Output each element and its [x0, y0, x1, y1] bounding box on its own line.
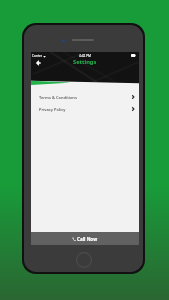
staticText: 4:42 PM: [79, 54, 91, 58]
button[interactable]: Back: [33, 57, 44, 69]
staticText: Carrier: [32, 54, 43, 58]
staticText: Terms & Conditions: [39, 95, 77, 100]
button[interactable]: Terms & Conditions: [31, 91, 139, 103]
button[interactable]: Privacy Policy: [31, 103, 139, 115]
staticText: Call Now: [77, 236, 98, 242]
staticText: Settings: [73, 58, 97, 66]
button[interactable]: Call Now: [31, 232, 139, 245]
staticText: Privacy Policy: [39, 107, 66, 112]
